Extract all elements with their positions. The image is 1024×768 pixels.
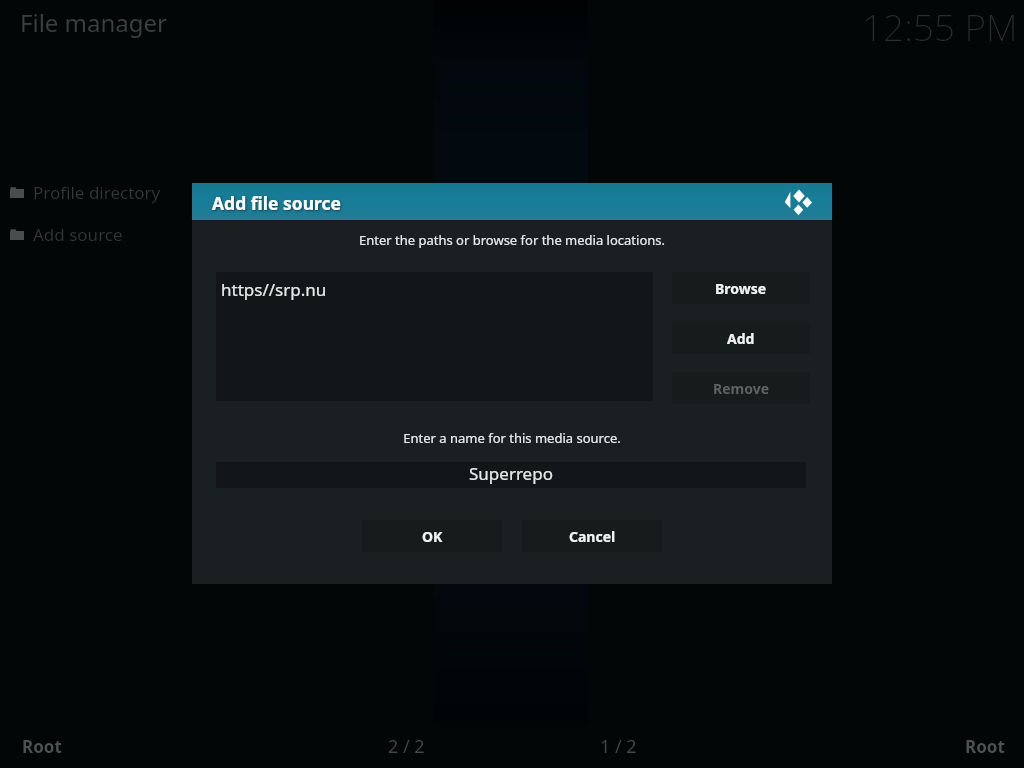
button[interactable]: Remove xyxy=(672,372,810,404)
staticText: https//srp.nu xyxy=(221,278,327,301)
staticText: Add xyxy=(727,329,755,348)
button[interactable]: OK xyxy=(362,520,502,552)
staticText: 2 / 2 xyxy=(388,734,425,759)
button[interactable]: Browse xyxy=(672,272,810,304)
staticText: Add source xyxy=(33,223,123,246)
staticText: Remove xyxy=(713,379,770,398)
button[interactable]: Kodi home xyxy=(782,186,815,218)
button[interactable]: Cancel xyxy=(522,520,662,552)
button[interactable]: Add file source xyxy=(192,183,832,220)
button[interactable]: Profile directory xyxy=(0,171,192,213)
button[interactable]: Add source xyxy=(0,213,192,255)
staticText: Root xyxy=(22,735,62,758)
staticText: Enter a name for this media source. xyxy=(192,429,832,447)
staticText: File manager xyxy=(20,6,168,39)
staticText: Browse xyxy=(715,279,767,298)
staticText: Cancel xyxy=(569,527,616,546)
staticText: OK xyxy=(422,527,443,546)
staticText: Superrepo xyxy=(469,462,553,485)
button[interactable]: Superrepo xyxy=(216,462,806,488)
staticText: Root xyxy=(965,735,1005,758)
staticText: 12:55 PM xyxy=(862,1,1018,51)
staticText: Profile directory xyxy=(33,181,161,204)
button[interactable]: https//srp.nu xyxy=(216,272,653,401)
button[interactable]: Add xyxy=(672,322,810,354)
staticText: Enter the paths or browse for the media … xyxy=(192,231,832,249)
staticText: 1 / 2 xyxy=(600,734,637,759)
staticText: Add file source xyxy=(212,191,342,215)
